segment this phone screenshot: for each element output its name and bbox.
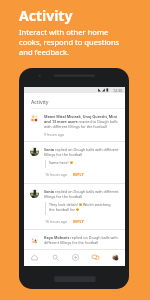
button[interactable]: Search: [45, 250, 65, 266]
button[interactable]: Add: [65, 250, 85, 266]
button[interactable]: REPLY: [73, 219, 84, 224]
staticText: They look delish!: [49, 202, 78, 207]
staticText: Activity: [31, 98, 49, 105]
button[interactable]: Home: [24, 250, 45, 266]
staticText: Activity: [19, 6, 73, 25]
staticText: 12:30: [113, 88, 123, 93]
staticText: the football for: [49, 207, 75, 212]
staticText: Interact with other home cooks, respond …: [19, 27, 122, 57]
button[interactable]: REPLY: [73, 172, 84, 177]
staticText: 9 hours ago: [44, 132, 65, 137]
staticText: Kaya Mohsnis replied on Dough balls with…: [44, 235, 120, 245]
button[interactable]: Kaya Mohsnis replied on Dough balls with…: [24, 230, 125, 249]
staticText: 16 hours ago: [45, 172, 68, 177]
button[interactable]: Activity: [85, 250, 105, 266]
button[interactable]: Profile: [105, 250, 125, 266]
staticText: REPLY: [73, 219, 84, 224]
staticText: Manvi Mital Mistrak, Unoj Qureshi, Mini …: [44, 114, 120, 129]
staticText: Sonia replied on Dough balls with differ…: [44, 189, 120, 199]
staticText: Same here!: [49, 160, 69, 165]
button[interactable]: Sonia replied on Dough balls with differ…: [24, 184, 125, 229]
staticText: Sonia replied on Dough balls with differ…: [44, 147, 120, 157]
staticText: REPLY: [73, 172, 84, 177]
staticText: Worth watching: [83, 202, 111, 207]
button[interactable]: Manvi Mital Mistrak, Unoj Qureshi, Mini …: [24, 109, 125, 141]
staticText: 16 hours ago: [45, 219, 68, 224]
button[interactable]: Sonia replied on Dough balls with differ…: [24, 142, 125, 183]
